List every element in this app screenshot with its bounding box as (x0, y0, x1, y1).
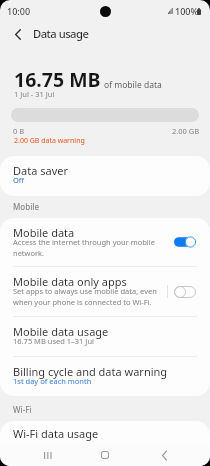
button[interactable]: Mobile data usage (0, 317, 210, 356)
button[interactable]: Mobile data (0, 218, 210, 266)
button[interactable]: Off (174, 286, 196, 298)
staticText: 1 Jul - 31 Jul (14, 89, 55, 99)
button[interactable]: Mobile data only apps (0, 267, 210, 316)
staticText: Wi-Fi data usage (13, 426, 99, 441)
staticText: 0 B (13, 126, 25, 136)
staticText: Mobile data only apps (13, 274, 127, 289)
button[interactable]: Wi-Fi data usage (0, 421, 210, 466)
button[interactable]: On (174, 236, 196, 248)
staticText: 16.75 MB used 1–31 Jul (13, 336, 94, 346)
staticText: 10:00 (7, 5, 31, 17)
staticText: Mobile data (13, 225, 75, 240)
button[interactable]: Recents (26, 444, 68, 466)
button[interactable]: Billing cycle and data warning (0, 357, 210, 396)
button[interactable]: Data saver (0, 156, 210, 196)
staticText: 2.00 GB data warning (14, 136, 85, 146)
staticText: Access the internet through your mobile … (13, 237, 178, 258)
button[interactable]: Back (143, 444, 185, 466)
staticText: Mobile data usage (13, 324, 109, 339)
staticText: 16.75 MB (14, 66, 101, 93)
staticText: Data saver (13, 163, 68, 178)
staticText: Data usage (33, 26, 89, 41)
staticText: 1st day of each month (13, 376, 92, 386)
staticText: Mobile (13, 201, 40, 212)
staticText: Off (13, 175, 25, 185)
staticText: 100% (175, 5, 199, 17)
staticText: Wi-Fi (13, 404, 32, 415)
staticText: 2.00 GB (172, 126, 200, 136)
button[interactable]: Navigate up (7, 23, 29, 45)
staticText: of mobile data (104, 79, 162, 91)
button[interactable]: Home (84, 444, 126, 466)
staticText: Billing cycle and data warning (13, 364, 168, 379)
staticText: Set apps to always use mobile data, even… (13, 286, 178, 307)
